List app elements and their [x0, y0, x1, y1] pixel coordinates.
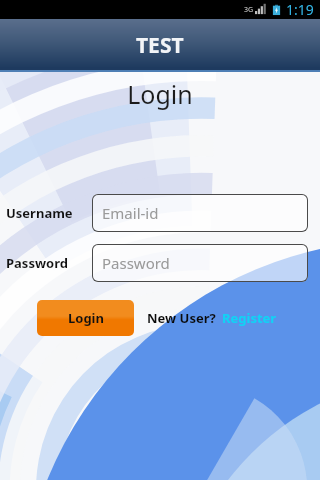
- staticText: Password: [6, 254, 68, 272]
- staticText: Login: [68, 309, 104, 327]
- staticText: Register: [222, 309, 277, 327]
- button[interactable]: Password: [92, 244, 308, 282]
- button[interactable]: Email-id: [92, 194, 308, 232]
- staticText: Password: [102, 253, 170, 273]
- button[interactable]: Register: [222, 309, 277, 327]
- staticText: Username: [6, 204, 73, 222]
- staticText: Login: [0, 77, 320, 111]
- staticText: 1:19: [286, 0, 314, 19]
- staticText: Email-id: [102, 203, 159, 223]
- button[interactable]: Login: [37, 300, 134, 336]
- staticText: 3G: [244, 5, 254, 15]
- staticText: New User?: [147, 309, 216, 327]
- staticText: TEST: [136, 31, 184, 60]
